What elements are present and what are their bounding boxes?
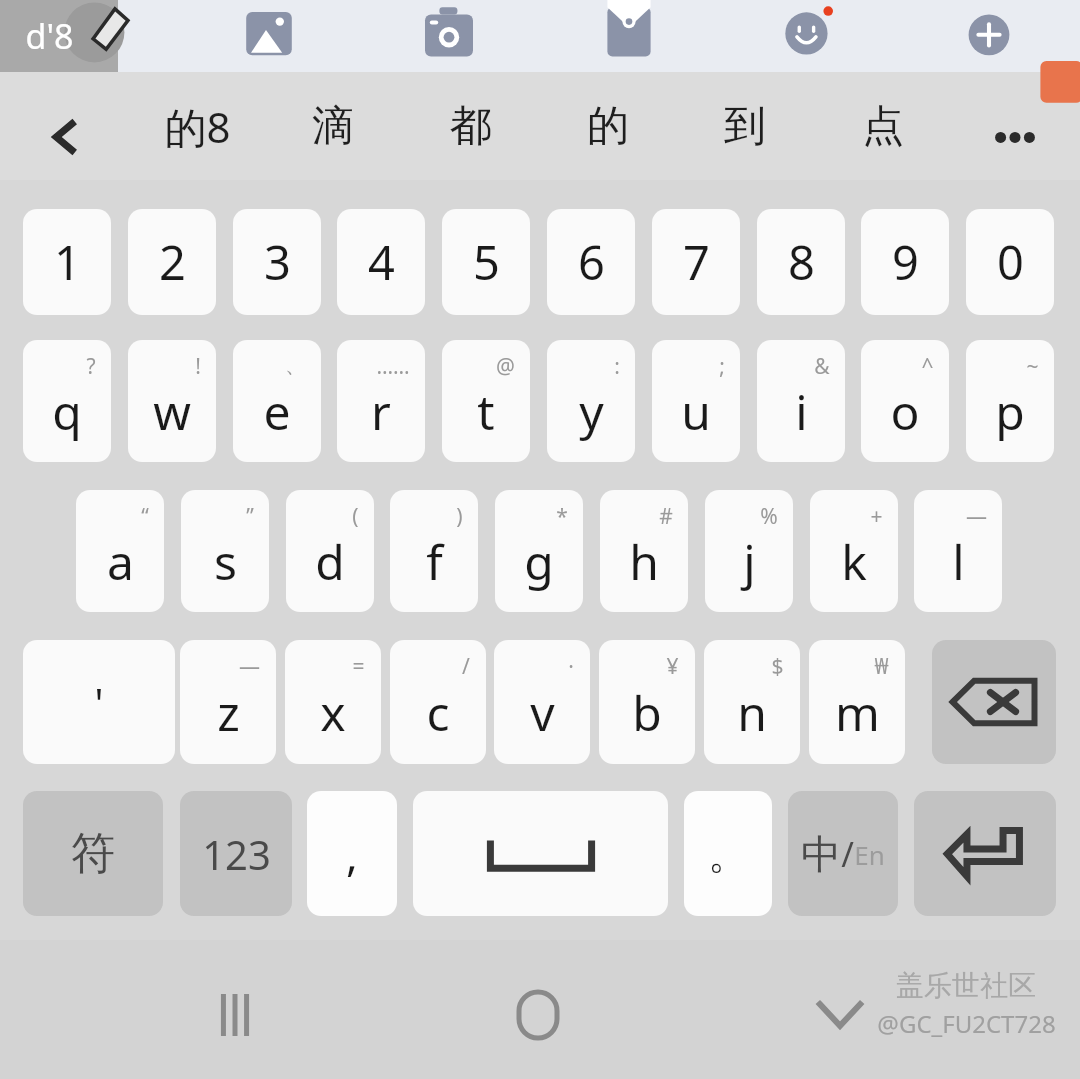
staticText: a [107, 529, 134, 594]
staticText: ~ [1026, 352, 1039, 381]
staticText: 的8 [164, 98, 231, 155]
button[interactable]: 1 [23, 209, 111, 315]
button[interactable]: ~ [966, 340, 1054, 462]
staticText: u [681, 379, 711, 444]
button[interactable]: 、 [233, 340, 321, 462]
button[interactable]: 123 [180, 791, 292, 916]
button[interactable]: / [390, 640, 486, 764]
staticText: / [462, 652, 470, 681]
staticText: l [952, 529, 965, 594]
button[interactable]: 5 [442, 209, 530, 315]
button[interactable]: Emoji [777, 4, 841, 68]
button[interactable]: — [914, 490, 1002, 612]
button[interactable]: ” [181, 490, 269, 612]
staticText: 中 [801, 829, 841, 879]
staticText: ) [456, 502, 463, 531]
button[interactable]: 到 [687, 80, 803, 172]
button[interactable]: Hide keyboard [785, 960, 895, 1070]
staticText: 的 [587, 100, 629, 153]
staticText: @ [496, 352, 515, 381]
staticText: : [614, 352, 620, 381]
button[interactable]: “ [76, 490, 164, 612]
staticText: , [346, 824, 358, 884]
staticText: t [477, 379, 495, 444]
button[interactable]: d'8 [0, 0, 118, 72]
button[interactable]: 9 [861, 209, 949, 315]
button[interactable]: ¥ [599, 640, 695, 764]
button[interactable]: # [600, 490, 688, 612]
button[interactable]: ) [390, 490, 478, 612]
button[interactable]: ? [23, 340, 111, 462]
button[interactable]: Back [22, 94, 108, 180]
button[interactable]: + [810, 490, 898, 612]
staticText: 9 [892, 230, 919, 294]
button[interactable]: Add [959, 6, 1019, 66]
button[interactable]: 都 [413, 80, 529, 172]
staticText: @GC_FU2CT728 [877, 1007, 1056, 1040]
button[interactable]: 7 [652, 209, 740, 315]
button[interactable]: · [494, 640, 590, 764]
button[interactable]: …… [337, 340, 425, 462]
button[interactable]: Switch language [788, 791, 898, 916]
button[interactable]: Space [413, 791, 668, 916]
button[interactable]: ₩ [809, 640, 905, 764]
button[interactable]: ! [128, 340, 216, 462]
button[interactable]: ; [652, 340, 740, 462]
button[interactable]: Recents [180, 960, 290, 1070]
button[interactable]: Gallery [239, 6, 299, 66]
staticText: 。 [708, 829, 748, 879]
button[interactable]: Camera [419, 6, 479, 66]
staticText: 3 [264, 230, 291, 294]
button[interactable]: 6 [547, 209, 635, 315]
button[interactable]: Enter [914, 791, 1056, 916]
staticText: p [995, 379, 1025, 444]
staticText: ¥ [666, 652, 679, 681]
button[interactable]: 的 [550, 80, 666, 172]
button[interactable]: 3 [233, 209, 321, 315]
button[interactable]: 符 [23, 791, 163, 916]
button[interactable]: * [495, 490, 583, 612]
staticText: d [315, 529, 345, 594]
staticText: j [743, 529, 756, 594]
button[interactable]: 0 [966, 209, 1054, 315]
button[interactable]: Backspace [932, 640, 1056, 764]
button[interactable]: 滴 [275, 80, 391, 172]
staticText: — [966, 502, 987, 531]
button[interactable]: ' [23, 640, 175, 764]
staticText: 滴 [312, 100, 354, 153]
button[interactable]: 点 [825, 80, 941, 172]
staticText: e [263, 379, 291, 444]
staticText: 6 [578, 230, 605, 294]
button[interactable]: , [307, 791, 397, 916]
button[interactable]: — [180, 640, 276, 764]
staticText: r [371, 379, 391, 444]
button[interactable]: & [757, 340, 845, 462]
button[interactable]: $ [704, 640, 800, 764]
button[interactable]: 2 [128, 209, 216, 315]
button[interactable]: ^ [861, 340, 949, 462]
button[interactable]: 的8 [139, 80, 255, 172]
button[interactable]: 。 [684, 791, 772, 916]
staticText: + [870, 502, 883, 531]
button[interactable]: Mail [599, 6, 659, 66]
staticText: 5 [473, 230, 500, 294]
staticText: % [760, 502, 778, 531]
staticText: ” [246, 502, 254, 531]
button[interactable]: 8 [757, 209, 845, 315]
staticText: ^ [921, 352, 934, 381]
button[interactable]: 4 [337, 209, 425, 315]
button[interactable]: : [547, 340, 635, 462]
button[interactable]: % [705, 490, 793, 612]
staticText: i [795, 379, 808, 444]
button[interactable]: = [285, 640, 381, 764]
button[interactable]: @ [442, 340, 530, 462]
button[interactable]: More candidates [972, 92, 1058, 178]
staticText: x [320, 680, 346, 745]
button[interactable]: Home [483, 960, 593, 1070]
staticText: 符 [71, 826, 115, 881]
staticText: y [579, 379, 604, 444]
staticText: 到 [724, 100, 766, 153]
staticText: ' [94, 674, 104, 731]
staticText: ; [719, 352, 725, 381]
button[interactable]: ( [286, 490, 374, 612]
